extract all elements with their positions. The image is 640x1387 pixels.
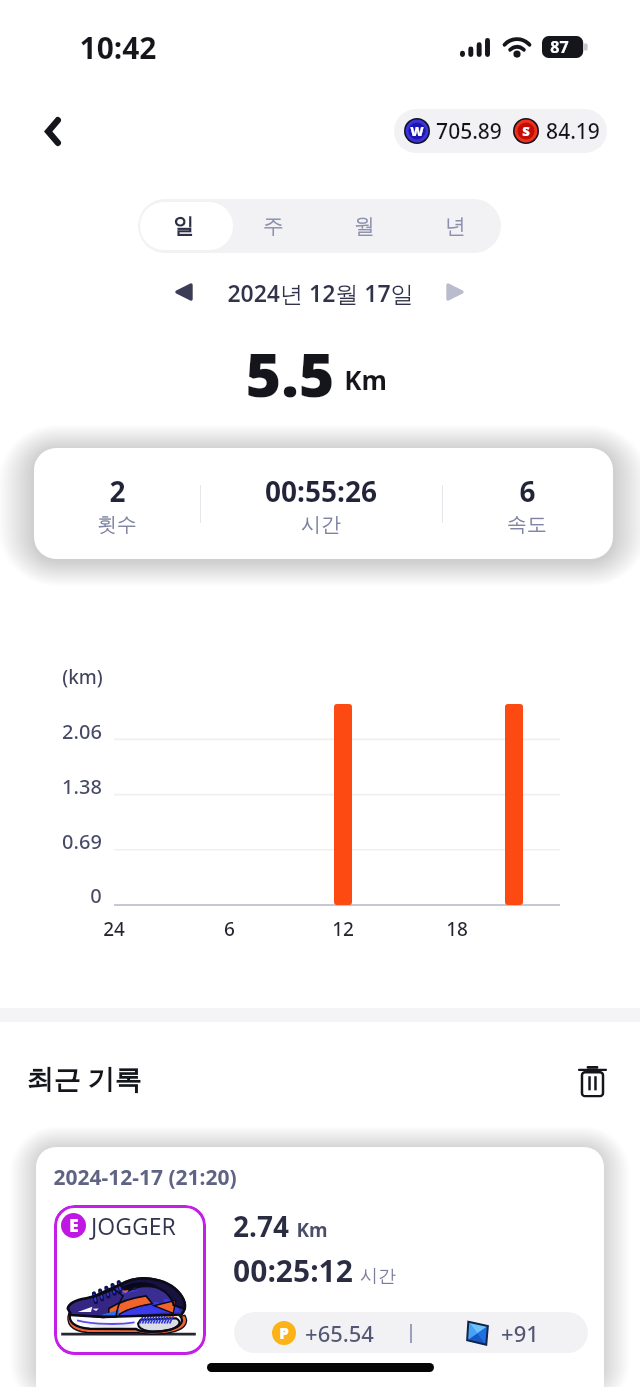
staticText: 84.19: [545, 117, 601, 146]
staticText: 12: [332, 916, 354, 942]
button[interactable]: 주: [228, 199, 319, 253]
staticText: 년: [445, 213, 466, 239]
staticText: JOGGER: [91, 1210, 176, 1241]
staticText: 2.74: [233, 1207, 289, 1245]
staticText: 87: [550, 36, 569, 58]
staticText: 10:42: [79, 27, 157, 68]
staticText: 2024년 12월 17일: [227, 277, 414, 308]
staticText: 시간: [360, 1265, 396, 1288]
button[interactable]: W: [394, 109, 607, 153]
staticText: 2.06: [62, 718, 102, 745]
staticText: E: [69, 1214, 79, 1237]
staticText: 2024-12-17 (21:20): [53, 1163, 237, 1192]
button[interactable]: Delete: [567, 1057, 617, 1107]
staticText: 24: [103, 916, 125, 942]
button[interactable]: Back: [27, 105, 79, 157]
staticText: P: [279, 1323, 289, 1343]
staticText: 00:25:12: [233, 1250, 353, 1291]
staticText: 월: [354, 213, 375, 239]
staticText: W: [410, 122, 424, 140]
staticText: +91: [501, 1318, 539, 1348]
staticText: Km: [296, 1217, 328, 1243]
button[interactable]: 년: [410, 199, 501, 253]
button[interactable]: P: [234, 1312, 588, 1353]
button[interactable]: 월: [319, 199, 410, 253]
staticText: 5.5: [245, 332, 335, 402]
staticText: 일: [173, 213, 194, 239]
button[interactable]: 2024-12-17 (21:20): [36, 1147, 604, 1387]
staticText: 1.38: [62, 773, 102, 800]
staticText: 705.89: [436, 117, 502, 146]
staticText: (km): [62, 664, 103, 690]
staticText: 0: [90, 882, 102, 909]
button[interactable]: 일: [138, 199, 228, 253]
staticText: 횟수: [97, 512, 137, 537]
staticText: 2: [109, 472, 126, 510]
staticText: 시간: [301, 512, 341, 537]
staticText: S: [522, 122, 530, 140]
staticText: 최근 기록: [26, 1060, 142, 1097]
staticText: 00:55:26: [265, 472, 377, 510]
staticText: 속도: [507, 512, 547, 537]
staticText: Km: [344, 362, 387, 397]
staticText: 0.69: [62, 828, 102, 855]
staticText: 6: [519, 472, 536, 510]
staticText: +65.54: [305, 1318, 374, 1348]
staticText: 18: [446, 916, 468, 942]
button[interactable]: Previous day: [162, 270, 206, 314]
button[interactable]: Next day: [433, 270, 477, 314]
staticText: 6: [224, 916, 235, 942]
staticText: 주: [263, 213, 284, 239]
